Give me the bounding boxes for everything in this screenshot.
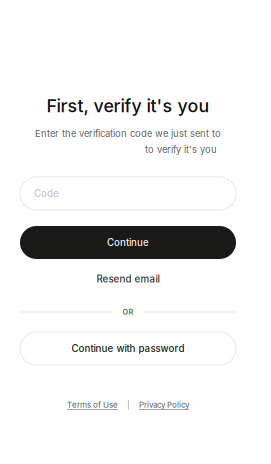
staticText: Continue — [107, 237, 149, 248]
staticText: OR — [122, 308, 133, 316]
textField[interactable]: Code — [20, 177, 236, 210]
staticText: Terms of Use — [67, 400, 118, 410]
staticText: Continue with password — [71, 343, 184, 354]
button[interactable]: Continue — [20, 226, 236, 259]
button[interactable]: Privacy Policy — [139, 400, 189, 410]
staticText: Resend email — [96, 273, 159, 285]
staticText: | — [127, 400, 130, 410]
staticText: Privacy Policy — [139, 400, 189, 410]
staticText: First, verify it's you — [46, 95, 209, 116]
staticText: Enter the verification code we just sent… — [35, 128, 221, 139]
button[interactable]: Terms of Use — [67, 400, 118, 410]
staticText: Code — [34, 188, 59, 199]
staticText: to verify it's you — [145, 144, 217, 155]
button[interactable]: Continue with password — [20, 332, 236, 365]
button[interactable]: Resend email — [20, 273, 236, 285]
